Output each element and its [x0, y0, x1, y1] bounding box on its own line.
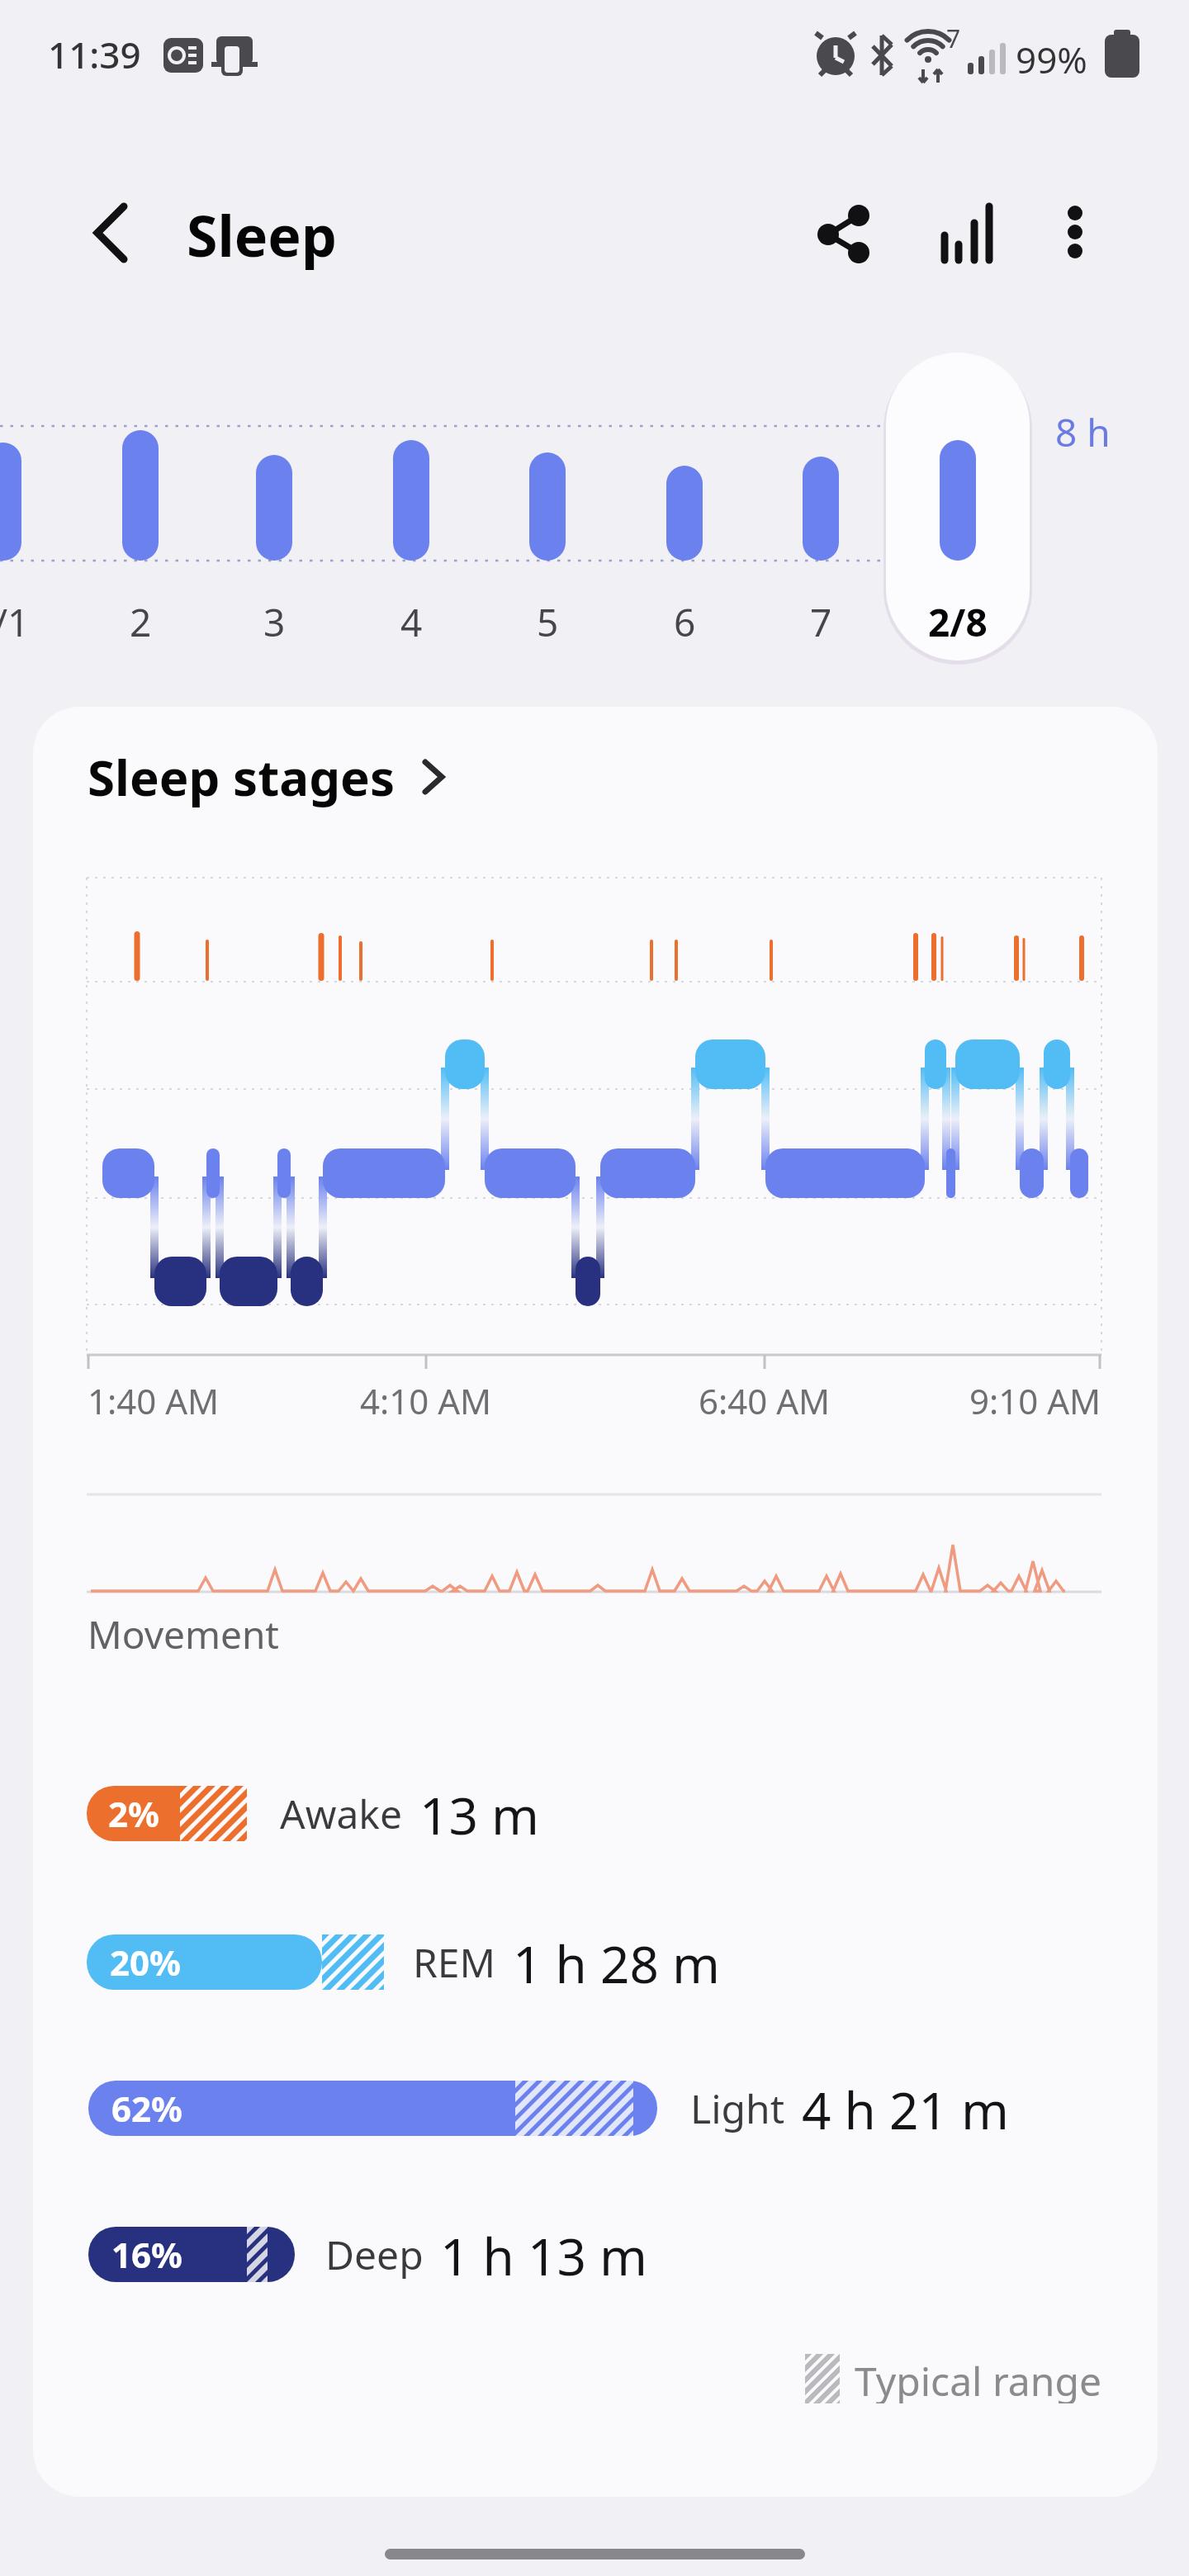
button[interactable] — [74, 190, 157, 272]
button[interactable]: 2% — [87, 1786, 180, 1841]
staticText: Sleep — [187, 197, 337, 273]
staticText: 16% — [111, 2231, 182, 2278]
staticText: Sleep stages — [88, 743, 396, 811]
staticText: 20% — [110, 1939, 181, 1986]
button[interactable] — [385, 2549, 805, 2559]
staticText: 13 m — [419, 1780, 540, 1846]
staticText: 11:39 — [48, 30, 141, 79]
staticText: 6 — [674, 596, 696, 648]
staticText: 4 h 21 m — [802, 2075, 1010, 2141]
button[interactable]: 4 — [362, 596, 461, 648]
button[interactable]: Sleep stages — [88, 743, 450, 811]
button[interactable]: 2 — [91, 596, 190, 648]
staticText: 7 — [946, 21, 961, 55]
button[interactable] — [801, 190, 892, 281]
staticText: 2/8 — [928, 596, 988, 648]
staticText: 5 — [537, 596, 559, 648]
staticText: 1 h 28 m — [513, 1929, 721, 1995]
staticText: 2 — [130, 596, 152, 648]
button[interactable] — [1036, 190, 1115, 281]
staticText: 99% — [1016, 35, 1087, 84]
button[interactable]: 7 — [771, 596, 870, 648]
staticText: Typical range — [855, 2354, 1101, 2403]
staticText: Awake — [280, 1787, 403, 1840]
button[interactable] — [925, 190, 1016, 281]
staticText: REM — [413, 1935, 496, 1989]
staticText: 62% — [111, 2085, 182, 2132]
button[interactable]: 16% — [88, 2227, 295, 2282]
button[interactable] — [886, 353, 1030, 661]
staticText: 4 — [400, 596, 423, 648]
staticText: Deep — [325, 2228, 424, 2281]
staticText: 4:10 AM — [360, 1377, 492, 1424]
button[interactable]: 3 — [225, 596, 324, 648]
staticText: Movement — [88, 1608, 279, 1660]
staticText: 2% — [108, 1790, 159, 1837]
button[interactable]: 5 — [498, 596, 597, 648]
button[interactable]: 62% — [88, 2081, 657, 2136]
button[interactable]: 6 — [635, 596, 734, 648]
staticText: 1:40 AM — [88, 1377, 220, 1424]
button[interactable]: 20% — [87, 1934, 322, 1990]
staticText: 8 h — [1055, 406, 1111, 458]
staticText: /1 — [0, 596, 30, 648]
staticText: Light — [690, 2081, 785, 2135]
staticText: 3 — [263, 596, 286, 648]
staticText: 7 — [810, 596, 832, 648]
staticText: 9:10 AM — [969, 1377, 1101, 1424]
staticText: 1 h 13 m — [440, 2221, 648, 2287]
staticText: 6:40 AM — [699, 1377, 831, 1424]
